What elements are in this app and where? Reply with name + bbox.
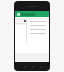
button[interactable]: Menu [15, 11, 49, 17]
button[interactable] [16, 19, 49, 20]
button[interactable] [16, 31, 49, 32]
button[interactable] [16, 39, 49, 40]
button[interactable] [28, 19, 48, 39]
button[interactable] [16, 27, 49, 28]
button[interactable]: Home [31, 65, 34, 68]
button[interactable] [16, 35, 49, 36]
button[interactable]: Back [23, 65, 26, 68]
button[interactable]: Recents [39, 65, 42, 68]
button[interactable]: Menu [16, 12, 20, 16]
button[interactable] [16, 23, 49, 24]
